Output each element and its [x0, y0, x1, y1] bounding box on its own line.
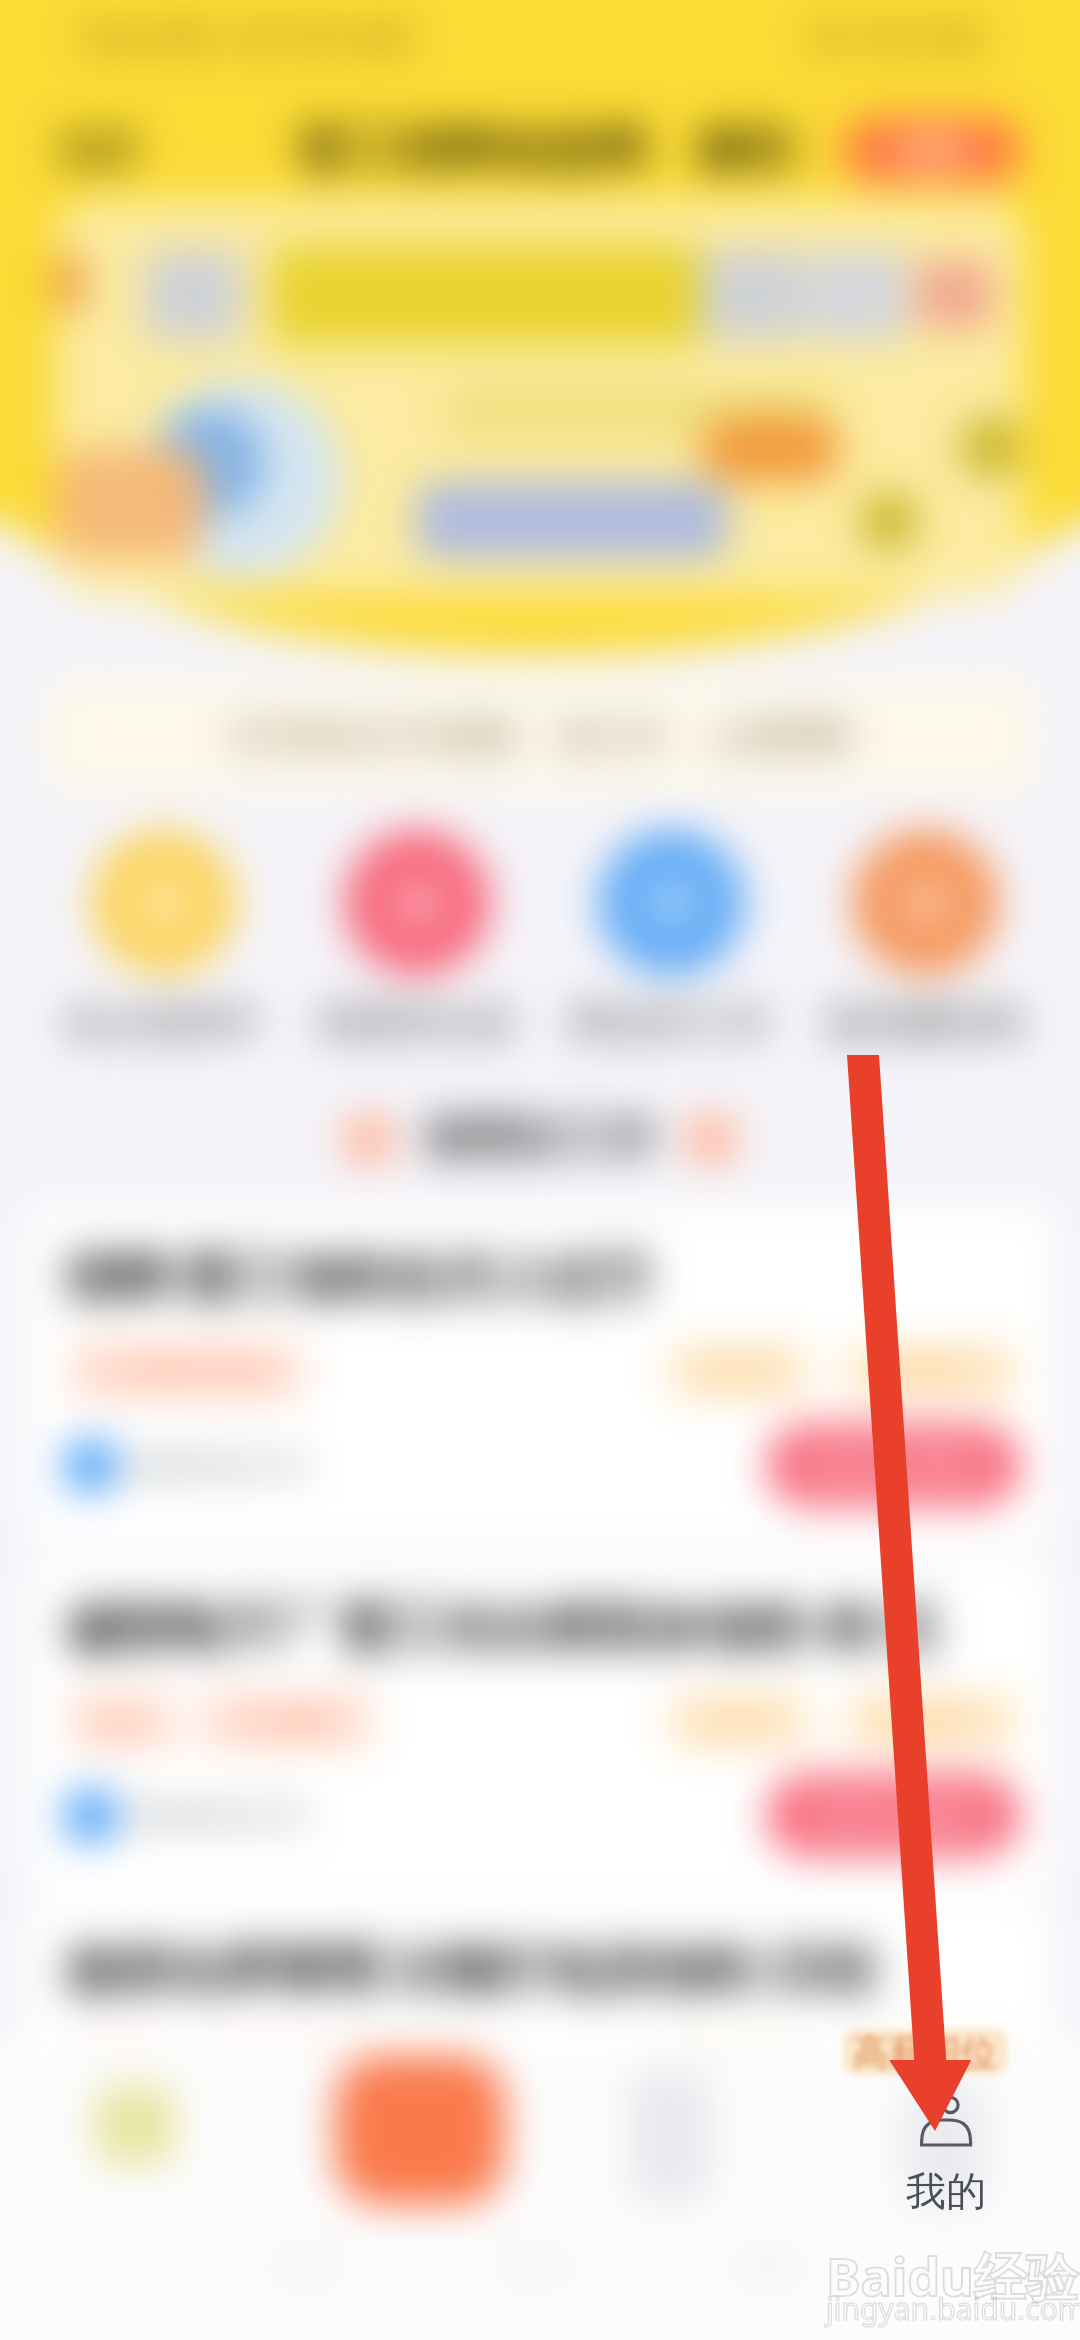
staticText: 找工作 [558, 714, 666, 759]
button[interactable]: 6000-9000 [805, 1441, 982, 1490]
button[interactable]: 急招兼职岗 [798, 830, 1052, 1047]
staticText: 高薪职位 [868, 1701, 996, 1741]
staticText: 某某科技公司 [128, 1447, 308, 1485]
staticText: 名企 [90, 1701, 154, 1741]
staticText: 6000-9000 [805, 1441, 982, 1490]
button[interactable]: 招聘 普工包吃住月入过万 [28, 1208, 1052, 1542]
button[interactable]: 发布职位 [335, 2055, 505, 2205]
staticText: 包住宿 [690, 1701, 786, 1741]
staticText: 百万职位天天更新 [230, 714, 518, 759]
staticText: 附近好工作 [571, 997, 771, 1047]
staticText: 急招仓库管理 分拣打包员包吃·日结 [66, 1932, 874, 2003]
button[interactable]: 我的 [905, 2085, 985, 2205]
staticText: Baidu经验 [826, 2240, 1078, 2311]
staticText: 高薪职位 [853, 2030, 997, 2075]
button[interactable] [55, 198, 1024, 596]
staticText: 某某科技公司 [128, 1797, 308, 1835]
button[interactable]: 首页 [95, 2085, 175, 2165]
staticText: 5000-8000 [805, 1791, 982, 1840]
button[interactable]: 诚招电子厂 普工长白班双休包吃·有·五 [28, 1558, 1052, 1892]
staticText: jingyan.baidu.com [826, 2288, 1080, 2329]
staticText: 4500-7000 [805, 2133, 982, 2182]
staticText: 搜索 [900, 130, 964, 170]
staticText: 名企直招中 [63, 997, 263, 1047]
staticText: 某某科技公司 [128, 2139, 308, 2177]
staticText: 推荐好工作 [425, 1110, 655, 1168]
button[interactable]: 名企直招中 [36, 830, 290, 1047]
button[interactable]: 高薪职位 [843, 2029, 1007, 2075]
button[interactable]: 我的 [873, 2086, 1019, 2216]
staticText: 今日新开 [222, 2043, 350, 2083]
button[interactable]: 5000-8000 [805, 1791, 982, 1840]
button[interactable]: 附近好工作 [544, 830, 798, 1047]
staticText: 高薪职位多 [317, 997, 517, 1047]
staticText: 今日新开职位 [90, 1351, 282, 1391]
button[interactable]: 百万职位天天更新 [48, 682, 1032, 790]
staticText: 急招兼职岗 [825, 997, 1025, 1047]
staticText: 招聘 普工包吃住月入过万 [66, 1240, 652, 1311]
staticText: 今日新开 [222, 1701, 350, 1741]
staticText: 高薪职位 [868, 2043, 996, 2083]
staticText: 北京 [55, 124, 139, 177]
staticText: 我的 [906, 2166, 986, 2216]
button[interactable]: 4500-7000 [805, 2133, 982, 2182]
staticText: 名企 [90, 2043, 154, 2083]
button[interactable]: 消息 [630, 2070, 710, 2200]
staticText: 高薪职位 [868, 1351, 996, 1391]
staticText: 普工招聘信息网 [297, 119, 647, 182]
button[interactable]: 急招仓库管理 分拣打包员包吃·日结 [28, 1900, 1052, 2234]
staticText: 兼职 [695, 119, 795, 182]
staticText: 诚招电子厂 普工长白班双休包吃·有·五 [66, 1590, 941, 1661]
staticText: 包住宿 [690, 1351, 786, 1391]
staticText: 上招聘网 [706, 714, 850, 759]
button[interactable]: 搜索 [842, 117, 1022, 183]
button[interactable]: 高薪职位多 [290, 830, 544, 1047]
